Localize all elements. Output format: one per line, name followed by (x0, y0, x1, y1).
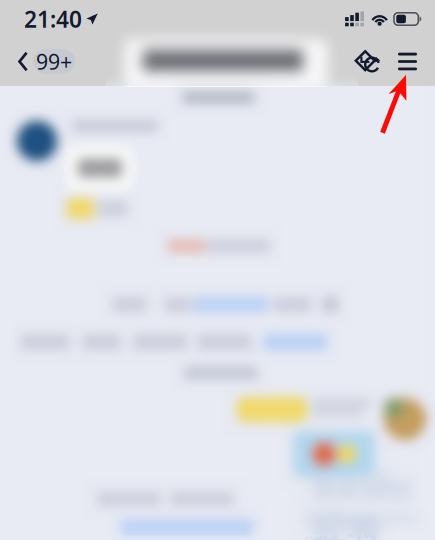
button[interactable]: Reminder tag (354, 49, 381, 73)
button[interactable]: 99+ (18, 49, 75, 74)
staticText: 99+ (36, 47, 72, 76)
staticText: Baidu 经验 (312, 462, 411, 540)
button[interactable]: Menu (398, 53, 417, 70)
staticText: 21:40 (24, 4, 82, 34)
staticText: jingyan.baidu.com (304, 505, 421, 540)
